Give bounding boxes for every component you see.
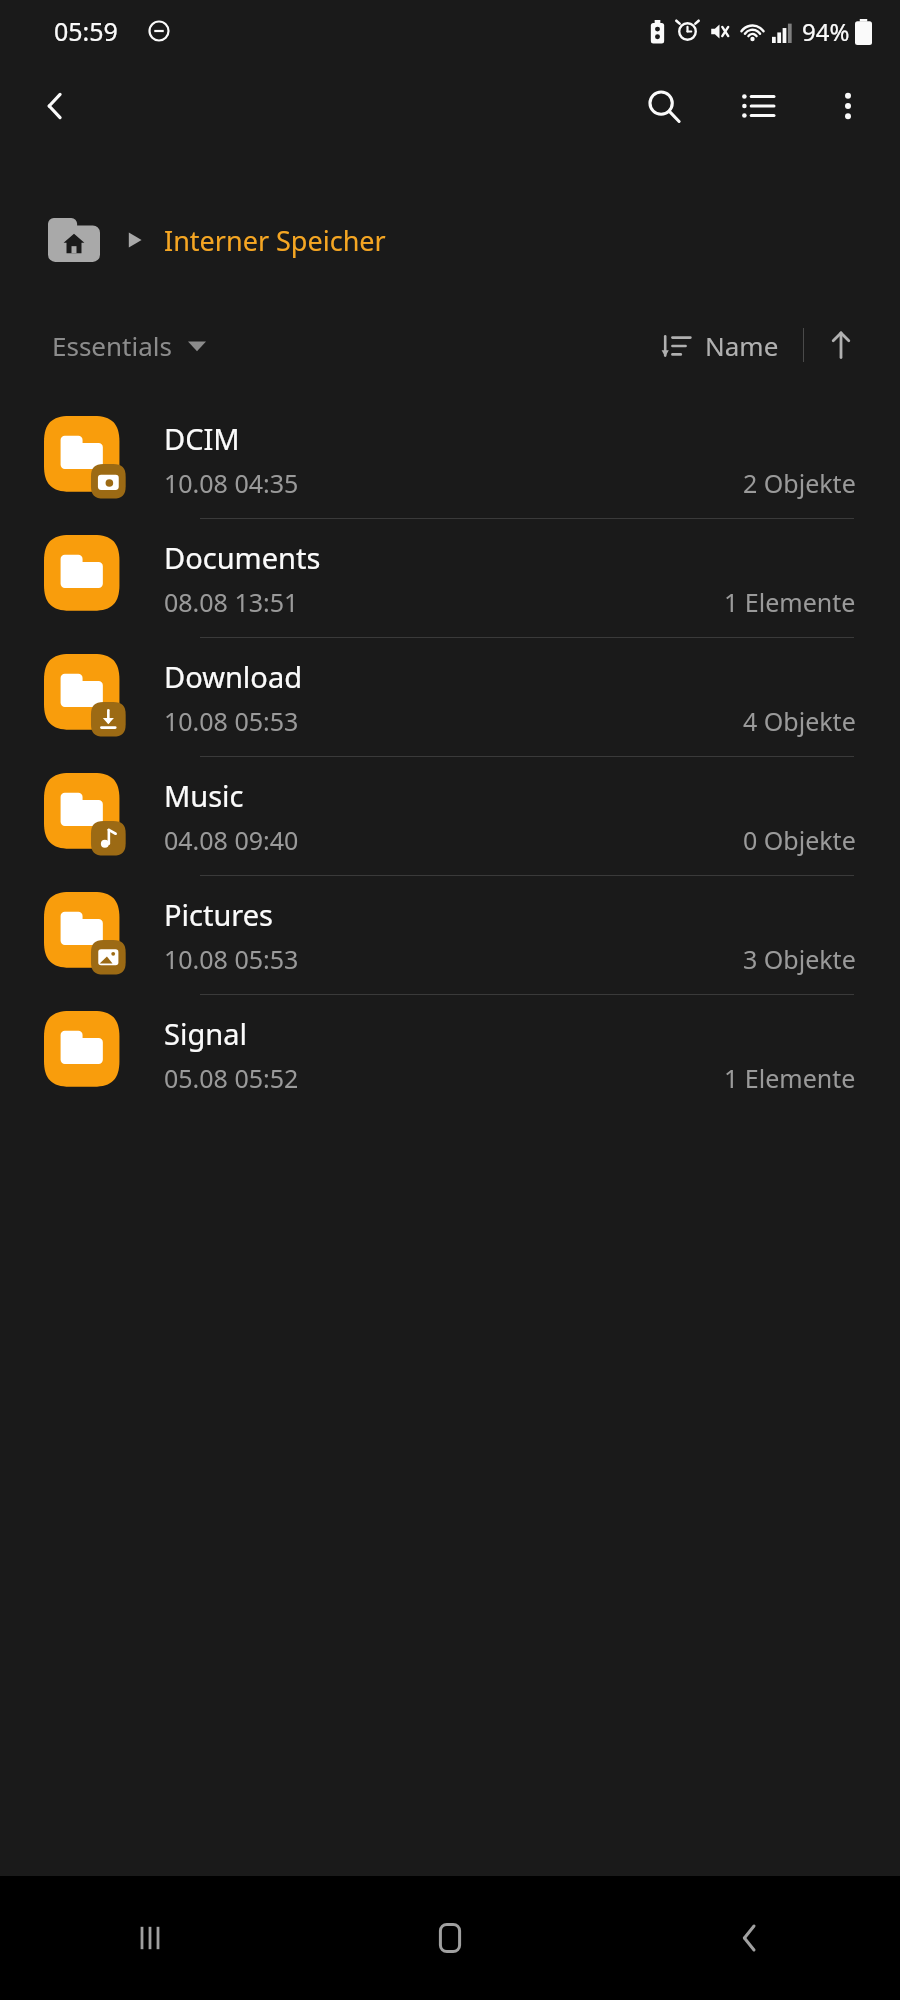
button[interactable]: More options — [812, 70, 884, 142]
staticText: 04.08 09:40 — [164, 823, 299, 857]
staticText: Signal — [164, 1014, 247, 1053]
staticText: DCIM — [164, 419, 240, 458]
button[interactable]: Back — [24, 74, 88, 138]
staticText: 1 Elemente — [724, 1061, 856, 1095]
button[interactable]: Download — [0, 638, 900, 756]
staticText: 2 Objekte — [743, 466, 856, 500]
button[interactable]: DCIM — [0, 400, 900, 518]
staticText: 3 Objekte — [743, 942, 856, 976]
staticText: 05:59 — [54, 14, 118, 48]
button[interactable]: Search — [628, 70, 700, 142]
button[interactable]: Sort ascending — [812, 316, 870, 374]
staticText: Download — [164, 657, 302, 696]
button[interactable]: View as list — [722, 70, 794, 142]
staticText: Documents — [164, 538, 321, 577]
button[interactable]: Essentials — [44, 322, 214, 369]
staticText: 0 Objekte — [743, 823, 856, 857]
staticText: Interner Speicher — [164, 222, 386, 259]
button[interactable]: Interner Speicher — [164, 222, 386, 259]
staticText: Pictures — [164, 895, 273, 934]
staticText: 08.08 13:51 — [164, 585, 299, 619]
staticText: 05.08 05:52 — [164, 1061, 299, 1095]
staticText: 10.08 05:53 — [164, 942, 299, 976]
staticText: Music — [164, 776, 244, 815]
staticText: 10.08 05:53 — [164, 704, 299, 738]
staticText: 1 Elemente — [724, 585, 856, 619]
button[interactable]: Pictures — [0, 876, 900, 994]
button[interactable]: Signal — [0, 995, 900, 1113]
staticText: 4 Objekte — [743, 704, 856, 738]
button[interactable]: Home — [300, 1876, 600, 2000]
button[interactable]: Documents — [0, 519, 900, 637]
staticText: Name — [705, 328, 779, 363]
button[interactable]: Back — [600, 1876, 900, 2000]
staticText: Essentials — [52, 328, 172, 363]
staticText: 10.08 04:35 — [164, 466, 299, 500]
button[interactable]: Music — [0, 757, 900, 875]
staticText: 94% — [802, 15, 850, 48]
button[interactable]: Recents — [0, 1876, 300, 2000]
button[interactable]: Name — [655, 322, 785, 369]
button[interactable]: Home folder — [48, 218, 100, 262]
